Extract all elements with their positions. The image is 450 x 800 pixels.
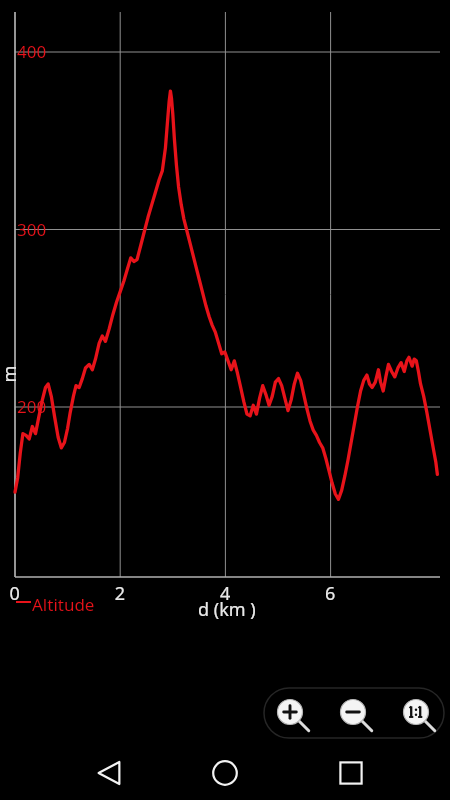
button[interactable]: Home [195, 748, 255, 800]
button[interactable]: Zoom in [270, 693, 311, 733]
button[interactable]: Reset zoom to 1:1 [396, 693, 437, 733]
button[interactable]: Back [80, 748, 140, 800]
button[interactable]: Zoom out [333, 693, 374, 733]
button[interactable]: Recent apps [321, 748, 381, 800]
